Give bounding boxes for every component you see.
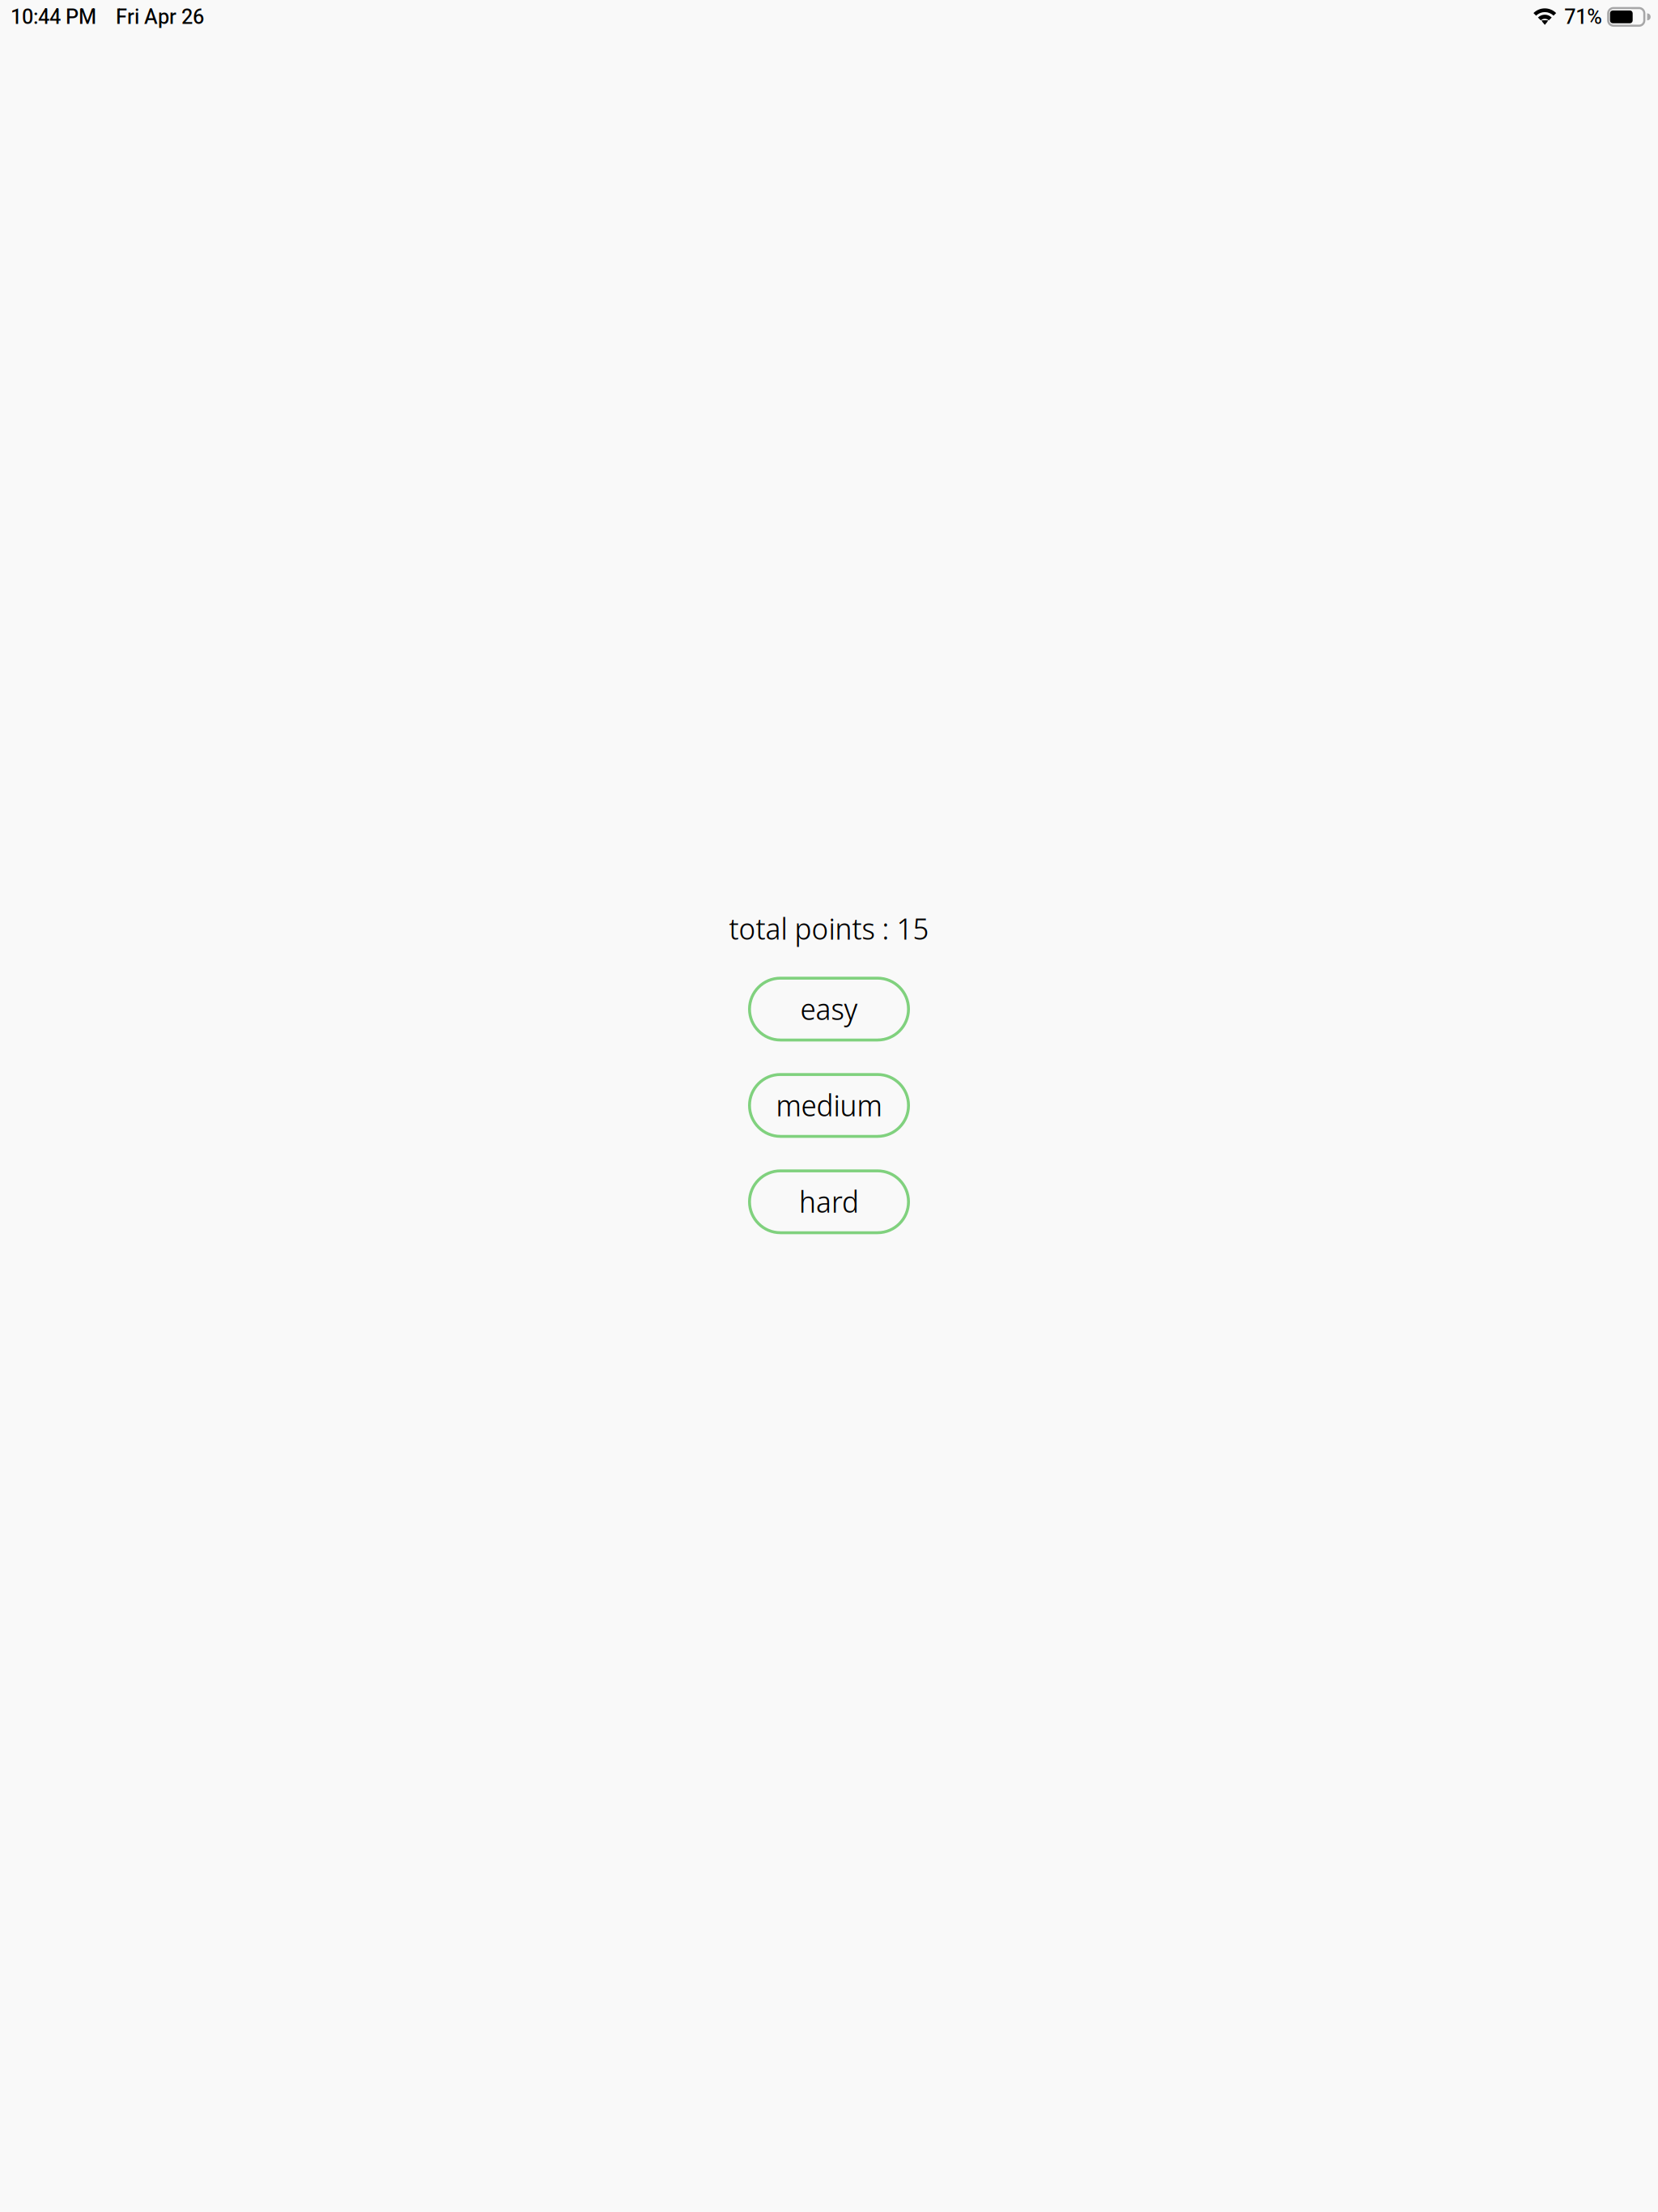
button[interactable]: hard — [748, 1169, 910, 1234]
staticText: Fri Apr 26 — [116, 5, 204, 29]
staticText: medium — [776, 1084, 882, 1125]
staticText: 71% — [1564, 5, 1602, 29]
button[interactable]: easy — [748, 977, 910, 1041]
staticText: total points : 15 — [729, 908, 929, 948]
staticText: hard — [799, 1181, 859, 1221]
staticText: easy — [800, 988, 858, 1029]
staticText: 10:44 PM — [11, 5, 96, 29]
button[interactable]: medium — [748, 1073, 910, 1138]
